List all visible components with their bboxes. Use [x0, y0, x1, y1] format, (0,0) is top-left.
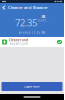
staticText: MB [41, 15, 45, 19]
staticText: Selected 72.35 MB [18, 31, 45, 34]
button[interactable]: CLEAN NOW [1, 82, 62, 91]
staticText: CLEAN NOW [24, 85, 40, 88]
staticText: Booster junk [9, 42, 27, 45]
staticText: Cleaner and Booster [8, 5, 48, 10]
staticText: Junk found [38, 19, 49, 22]
button[interactable]: Back [0, 3, 8, 12]
staticText: 72.35 [15, 16, 37, 29]
button[interactable]: Cleaner and [0, 37, 64, 47]
staticText: Cleaner and [9, 38, 28, 42]
